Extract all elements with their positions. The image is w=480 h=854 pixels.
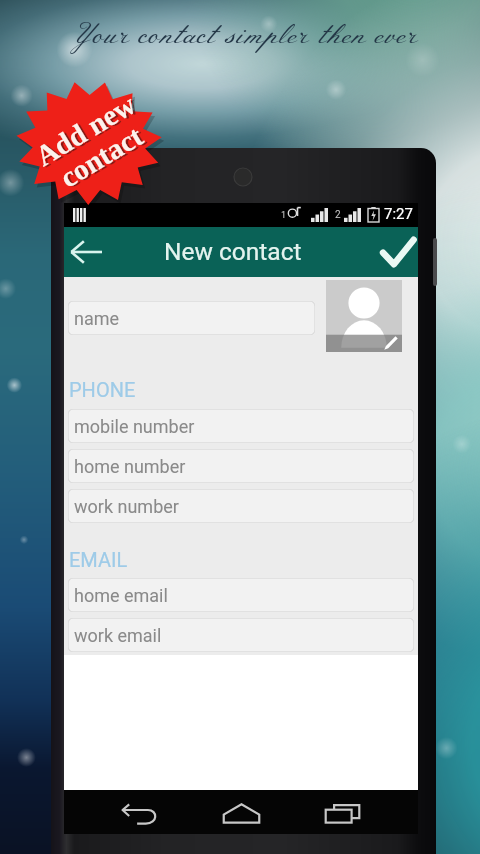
staticText: work number xyxy=(74,496,179,517)
button[interactable]: Home xyxy=(213,793,269,833)
button[interactable]: mobile number xyxy=(68,409,414,443)
button[interactable]: work number xyxy=(68,489,414,523)
button[interactable]: name xyxy=(68,301,315,335)
staticText: mobile number xyxy=(74,416,195,437)
button[interactable]: work email xyxy=(68,618,414,652)
button[interactable]: home number xyxy=(68,449,414,483)
staticText: 7:27 xyxy=(384,205,413,223)
staticText: home number xyxy=(74,456,186,477)
button[interactable]: Back xyxy=(112,794,168,834)
staticText: home email xyxy=(74,585,168,606)
button[interactable]: home email xyxy=(68,578,414,612)
staticText: New contact xyxy=(164,237,302,266)
staticText: Add new contact xyxy=(32,88,160,200)
staticText: Your contact simpler then ever xyxy=(60,18,419,53)
staticText: name xyxy=(74,308,120,329)
staticText: 2 xyxy=(335,209,341,221)
staticText: PHONE xyxy=(69,378,136,401)
button[interactable]: Save contact xyxy=(376,230,420,274)
staticText: EMAIL xyxy=(69,548,128,571)
staticText: Add new contact xyxy=(29,88,158,200)
staticText: 1 xyxy=(281,210,287,221)
staticText: work email xyxy=(74,625,162,646)
button[interactable]: Recent apps xyxy=(314,793,370,833)
button[interactable]: Back xyxy=(64,230,108,274)
